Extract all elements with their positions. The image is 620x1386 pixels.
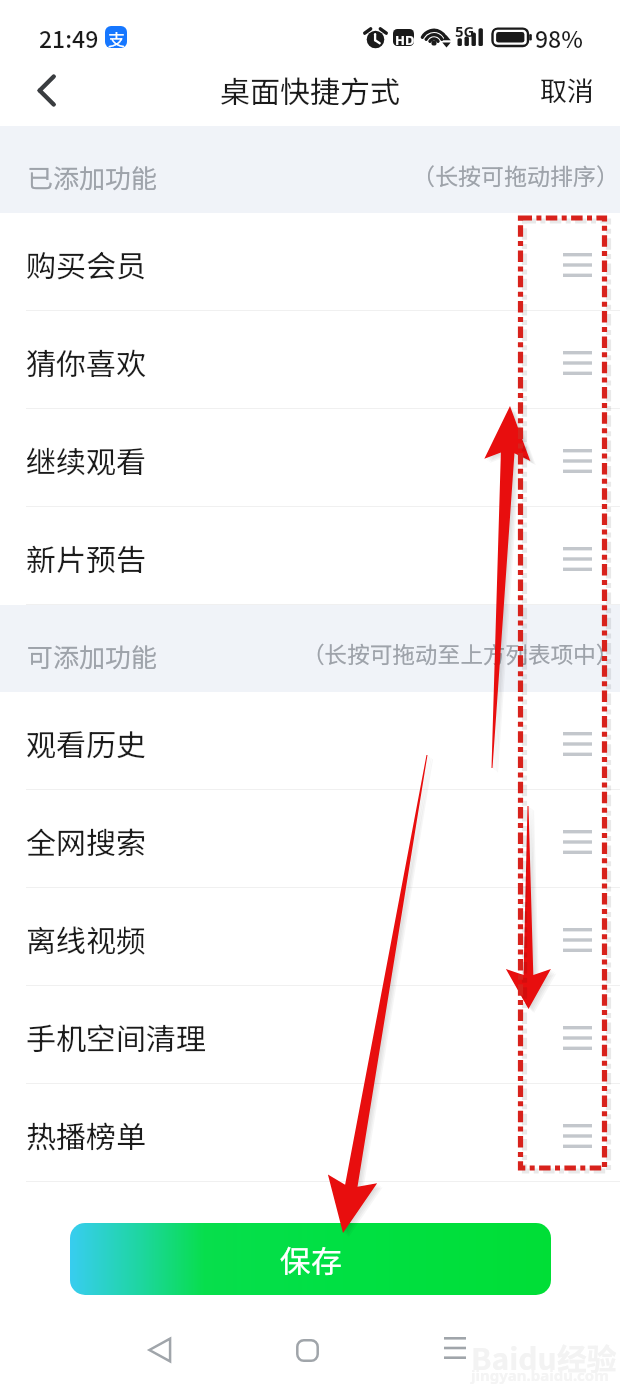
staticText: jingyan.baidu.com: [471, 1365, 609, 1385]
staticText: 观看历史: [26, 721, 146, 764]
button[interactable]: 主页: [272, 1315, 342, 1385]
button[interactable]: 全网搜索: [0, 790, 620, 888]
button[interactable]: 离线视频: [0, 888, 620, 986]
staticText: 继续观看: [26, 438, 146, 481]
button[interactable]: 购买会员: [0, 213, 620, 311]
staticText: Baidu经验: [471, 1335, 617, 1378]
button[interactable]: 热播榜单: [0, 1084, 620, 1182]
button[interactable]: 取消: [506, 63, 620, 115]
button[interactable]: 最近任务: [420, 1313, 490, 1383]
staticText: 手机空间清理: [26, 1015, 206, 1058]
button[interactable]: 继续观看: [0, 409, 620, 507]
staticText: 全网搜索: [26, 819, 146, 862]
staticText: 桌面快捷方式: [220, 68, 400, 111]
button[interactable]: 保存: [70, 1223, 551, 1295]
button[interactable]: 观看历史: [0, 692, 620, 790]
staticText: 5G: [455, 21, 475, 41]
staticText: （长按可拖动排序）: [412, 158, 619, 191]
staticText: 已添加功能: [27, 158, 158, 196]
staticText: 可添加功能: [27, 637, 158, 675]
staticText: （长按可拖动至上方列表项中）: [302, 637, 619, 670]
staticText: 购买会员: [26, 242, 146, 285]
button[interactable]: 返回: [0, 64, 92, 116]
staticText: HD: [395, 31, 415, 49]
staticText: 新片预告: [26, 536, 146, 579]
button[interactable]: 返回: [125, 1315, 195, 1385]
button[interactable]: 手机空间清理: [0, 986, 620, 1084]
staticText: 取消: [540, 70, 594, 109]
staticText: 21:49: [39, 21, 99, 54]
button[interactable]: 猜你喜欢: [0, 311, 620, 409]
staticText: 保存: [280, 1237, 342, 1282]
staticText: 热播榜单: [26, 1113, 146, 1156]
staticText: 离线视频: [26, 917, 146, 960]
staticText: 支: [108, 26, 125, 48]
staticText: 猜你喜欢: [26, 340, 146, 383]
button[interactable]: 新片预告: [0, 507, 620, 605]
staticText: 98%: [535, 21, 583, 54]
